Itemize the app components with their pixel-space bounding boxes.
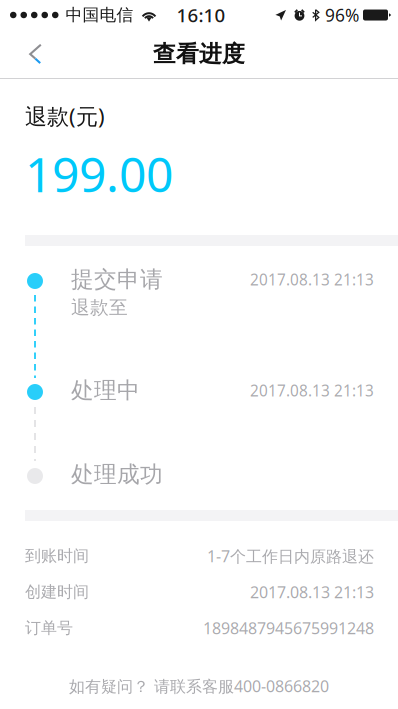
staticText: 1-7个工作日内原路退还	[207, 545, 374, 567]
staticText: 2017.08.13 21:13	[250, 380, 374, 401]
staticText: 16:10	[176, 2, 225, 28]
staticText: 2017.08.13 21:13	[250, 581, 374, 603]
staticText: 处理中	[71, 376, 140, 405]
staticText: 创建时间	[25, 582, 89, 602]
staticText: 到账时间	[25, 546, 89, 566]
staticText: 2017.08.13 21:13	[250, 269, 374, 290]
staticText: 199.00	[25, 141, 173, 206]
staticText: 96%	[325, 3, 359, 27]
staticText: 查看进度	[153, 40, 245, 68]
staticText: 退款至	[71, 296, 128, 319]
staticText: 订单号	[25, 618, 73, 638]
staticText: 退款(元)	[25, 101, 105, 131]
staticText: 1898487945675991248	[203, 617, 374, 639]
staticText: 提交申请	[71, 265, 163, 294]
staticText: 中国电信	[65, 4, 133, 25]
staticText: 如有疑问？ 请联系客服400-0866820	[69, 675, 329, 697]
staticText: 处理成功	[71, 460, 163, 489]
button[interactable]: 返回	[0, 30, 56, 78]
